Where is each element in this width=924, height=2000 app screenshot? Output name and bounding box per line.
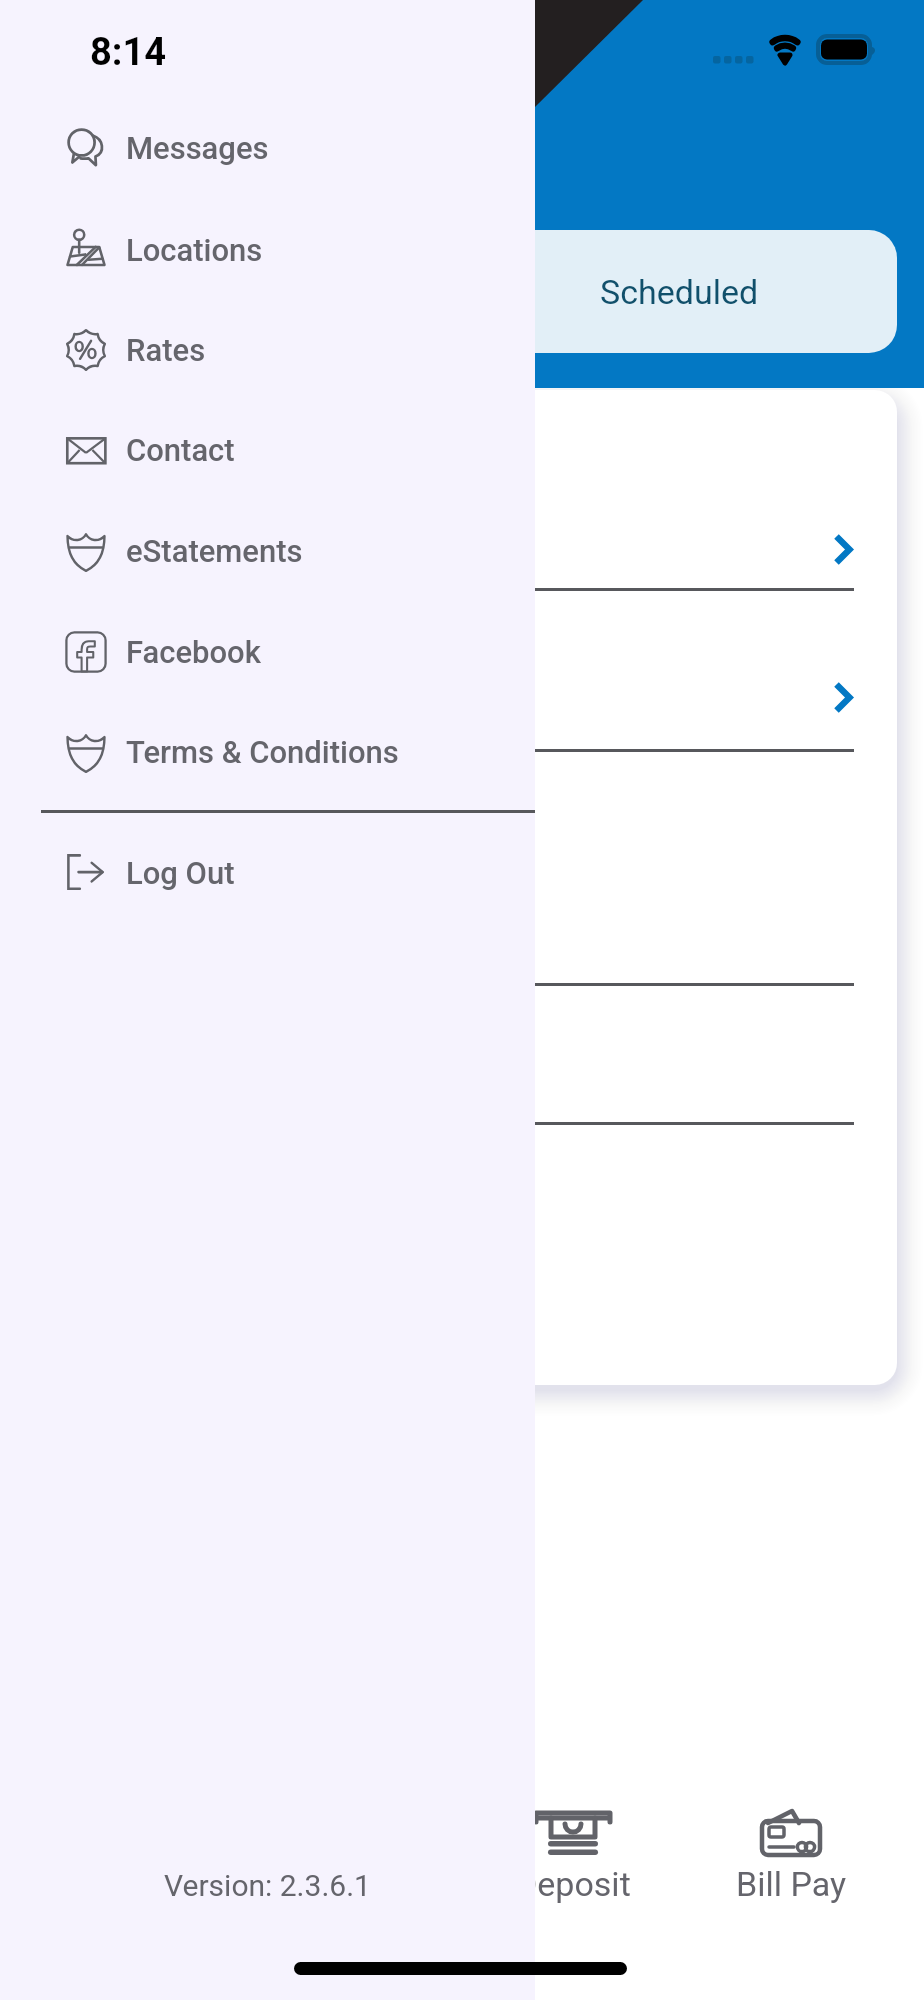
button[interactable]: Log Out — [0, 823, 535, 923]
button[interactable]: Contact — [0, 400, 535, 500]
staticText: Log Out — [126, 855, 235, 891]
staticText: Locations — [126, 232, 263, 268]
other: Open details — [829, 531, 869, 571]
button[interactable] — [27, 750, 897, 984]
button[interactable]: Transfers — [246, 1788, 464, 1908]
button[interactable]: Scheduled — [462, 230, 897, 353]
button[interactable]: Messages — [0, 98, 535, 198]
other: Open details — [829, 679, 869, 719]
staticText: eStatements — [126, 533, 303, 569]
staticText: Terms & Conditions — [126, 734, 399, 770]
button[interactable]: Accounts — [28, 1788, 246, 1908]
button[interactable]: Locations — [0, 200, 535, 300]
button[interactable]: Deposit — [464, 1788, 682, 1908]
staticText: Transfers — [283, 1864, 427, 1904]
staticText: Bill Pay — [736, 1864, 847, 1904]
staticText: Facebook — [126, 634, 261, 670]
staticText: Accounts — [65, 1864, 209, 1904]
button[interactable] — [27, 984, 897, 1124]
button[interactable]: eStatements — [0, 501, 535, 601]
button[interactable]: Facebook — [0, 602, 535, 702]
staticText: Deposit — [515, 1864, 631, 1904]
staticText: Rates — [126, 332, 206, 368]
button[interactable]: Recent — [27, 230, 462, 353]
staticText: Messages — [126, 130, 269, 166]
button[interactable]: Bill Pay — [682, 1788, 900, 1908]
staticText: Contact — [126, 432, 235, 468]
button[interactable]: Rates — [0, 300, 535, 400]
button[interactable] — [27, 590, 897, 750]
staticText: 8:14 — [90, 30, 167, 75]
button[interactable] — [27, 390, 897, 590]
button[interactable]: Terms & Conditions — [0, 702, 535, 802]
staticText: Version: 2.3.6.1 — [0, 1868, 535, 1903]
staticText: Scheduled — [600, 272, 759, 312]
